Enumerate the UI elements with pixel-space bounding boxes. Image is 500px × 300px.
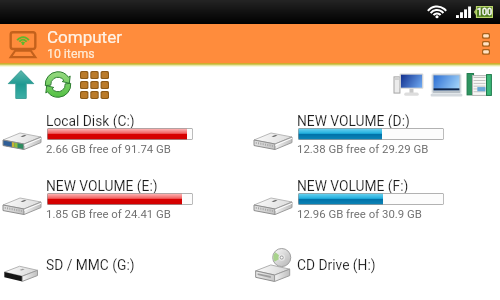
staticText: 12.38 GB free of 29.29 GB	[297, 142, 429, 155]
button[interactable]: Up one level	[8, 70, 34, 99]
staticText: Local Disk (C:)	[46, 113, 135, 129]
staticText: 1.85 GB free of 24.41 GB	[46, 207, 171, 220]
button[interactable]: CD Drive (H:)	[251, 234, 500, 299]
button[interactable]: NEW VOLUME (D:)	[251, 104, 500, 169]
button[interactable]: NEW VOLUME (F:)	[251, 169, 500, 234]
staticText: NEW VOLUME (E:)	[46, 178, 158, 194]
staticText: 12.96 GB free of 30.9 GB	[297, 207, 422, 220]
button[interactable]: More options	[472, 24, 500, 63]
staticText: NEW VOLUME (D:)	[297, 113, 410, 129]
staticText: 10 items	[47, 47, 95, 61]
staticText: 100	[477, 7, 493, 18]
button[interactable]: Grid view	[80, 71, 109, 99]
staticText: NEW VOLUME (F:)	[297, 178, 409, 194]
staticText: 2.66 GB free of 91.74 GB	[46, 142, 171, 155]
button[interactable]: Display	[430, 73, 463, 97]
button[interactable]: Refresh	[41, 70, 75, 99]
button[interactable]: NEW VOLUME (E:)	[0, 169, 251, 234]
button[interactable]: SD / MMC (G:)	[0, 234, 251, 299]
staticText: SD / MMC (G:)	[46, 257, 135, 273]
button[interactable]: Documents	[466, 72, 493, 98]
staticText: Computer	[47, 27, 122, 47]
staticText: CD Drive (H:)	[297, 257, 376, 273]
button[interactable]: Local Disk (C:)	[0, 104, 251, 169]
button[interactable]: My Computer	[393, 72, 426, 99]
